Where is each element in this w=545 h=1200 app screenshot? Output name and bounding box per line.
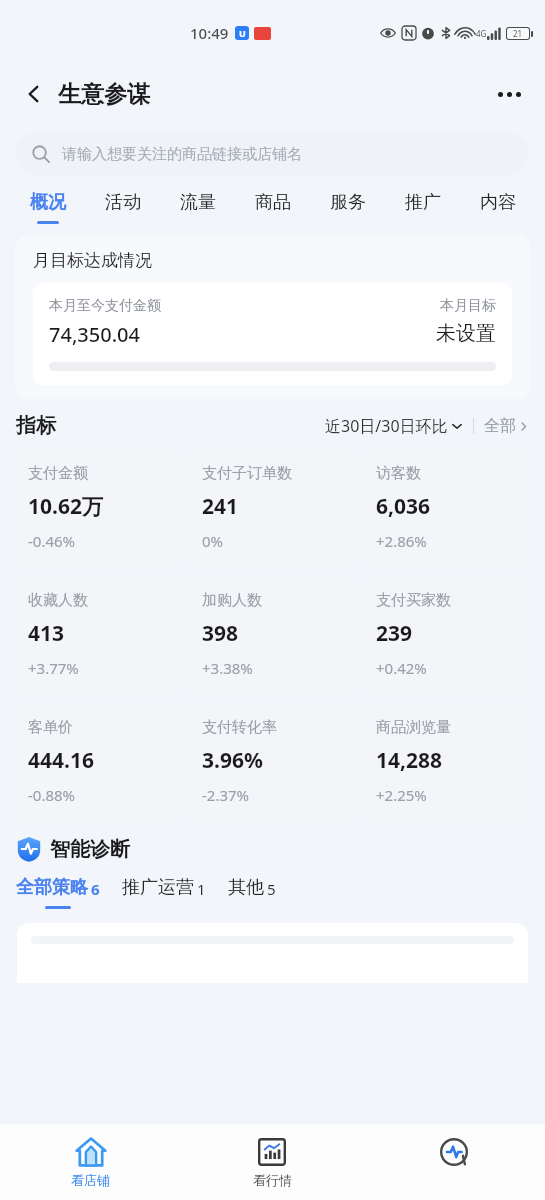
staticText: 398 bbox=[202, 619, 239, 648]
staticText: 指标 bbox=[16, 413, 56, 438]
staticText: +3.38% bbox=[202, 658, 253, 678]
staticText: 支付金额 bbox=[28, 464, 88, 483]
button[interactable]: More options bbox=[489, 74, 529, 114]
button[interactable]: 流量 bbox=[160, 182, 235, 232]
button[interactable] bbox=[17, 923, 528, 983]
staticText: 413 bbox=[28, 619, 65, 648]
button[interactable]: 全部策略 bbox=[16, 876, 100, 909]
staticText: 未设置 bbox=[436, 321, 496, 346]
staticText: 10:49 bbox=[190, 23, 229, 43]
staticText: 241 bbox=[202, 492, 239, 521]
staticText: 概况 bbox=[30, 191, 66, 214]
staticText: 访客数 bbox=[376, 464, 421, 483]
button[interactable]: 推广 bbox=[385, 182, 460, 232]
button[interactable]: 看行情 bbox=[181, 1124, 363, 1200]
staticText: 商品 bbox=[255, 191, 291, 214]
staticText: 看行情 bbox=[253, 1172, 292, 1188]
staticText: +2.25% bbox=[376, 785, 427, 805]
staticText: 商品浏览量 bbox=[376, 718, 451, 737]
staticText: 支付买家数 bbox=[376, 591, 451, 610]
button[interactable]: 近30日/30日环比 bbox=[325, 415, 463, 437]
staticText: 0% bbox=[202, 531, 224, 551]
staticText: 4G bbox=[476, 28, 487, 39]
button[interactable]: 看店铺 bbox=[0, 1124, 181, 1200]
button[interactable]: 推广运营 bbox=[122, 876, 206, 899]
button[interactable]: 请输入想要关注的商品链接或店铺名 bbox=[16, 132, 529, 176]
staticText: 推广 bbox=[405, 191, 441, 214]
staticText: 加购人数 bbox=[202, 591, 262, 610]
staticText: -2.37% bbox=[202, 785, 250, 805]
button[interactable]: 内容 bbox=[460, 182, 535, 232]
button[interactable]: 其他 bbox=[228, 876, 276, 899]
button[interactable]: 收藏人数 bbox=[15, 575, 182, 695]
staticText: -0.46% bbox=[28, 531, 76, 551]
button[interactable]: 商品 bbox=[235, 182, 310, 232]
staticText: 客单价 bbox=[28, 718, 73, 737]
staticText: 全部策略 bbox=[16, 876, 88, 899]
button[interactable]: 加购人数 bbox=[189, 575, 356, 695]
staticText: 内容 bbox=[480, 191, 516, 214]
staticText: 流量 bbox=[180, 191, 216, 214]
staticText: 21 bbox=[513, 28, 523, 39]
staticText: 3.96% bbox=[202, 746, 263, 775]
staticText: 其他 bbox=[228, 876, 264, 899]
staticText: 全部 bbox=[484, 416, 516, 436]
staticText: 看店铺 bbox=[71, 1172, 110, 1188]
button[interactable]: 客单价 bbox=[15, 702, 182, 822]
staticText: 智能诊断 bbox=[50, 837, 130, 862]
staticText: 生意参谋 bbox=[58, 80, 150, 109]
button[interactable]: 服务 bbox=[310, 182, 385, 232]
button[interactable]: 全部 bbox=[484, 416, 529, 436]
staticText: 6 bbox=[91, 879, 100, 899]
staticText: 239 bbox=[376, 619, 413, 648]
button[interactable]: 访客数 bbox=[363, 448, 530, 568]
staticText: +3.77% bbox=[28, 658, 79, 678]
staticText: 5 bbox=[267, 879, 276, 899]
staticText: 10.62万 bbox=[28, 492, 103, 521]
staticText: 444.16 bbox=[28, 746, 94, 775]
button[interactable]: 支付转化率 bbox=[189, 702, 356, 822]
staticText: +0.42% bbox=[376, 658, 427, 678]
button[interactable]: 月目标达成情况 bbox=[15, 236, 530, 399]
staticText: 服务 bbox=[330, 191, 366, 214]
button[interactable]: 支付金额 bbox=[15, 448, 182, 568]
staticText: 1 bbox=[197, 879, 206, 899]
staticText: 支付子订单数 bbox=[202, 464, 292, 483]
staticText: U bbox=[239, 27, 246, 39]
button[interactable]: 诊断 bbox=[363, 1124, 545, 1200]
staticText: 近30日/30日环比 bbox=[325, 415, 448, 437]
button[interactable]: 支付子订单数 bbox=[189, 448, 356, 568]
staticText: 14,288 bbox=[376, 746, 443, 775]
button[interactable]: 支付买家数 bbox=[363, 575, 530, 695]
staticText: 活动 bbox=[105, 191, 141, 214]
button[interactable]: 活动 bbox=[85, 182, 160, 232]
staticText: 本月至今支付金额 bbox=[49, 297, 161, 315]
staticText: +2.86% bbox=[376, 531, 427, 551]
staticText: 月目标达成情况 bbox=[33, 250, 152, 271]
button[interactable]: Back bbox=[16, 76, 52, 112]
button[interactable]: 概况 bbox=[10, 182, 85, 232]
staticText: 本月目标 bbox=[440, 297, 496, 315]
staticText: 74,350.04 bbox=[49, 321, 140, 348]
staticText: 6,036 bbox=[376, 492, 431, 521]
staticText: 支付转化率 bbox=[202, 718, 277, 737]
staticText: 收藏人数 bbox=[28, 591, 88, 610]
staticText: -0.88% bbox=[28, 785, 76, 805]
staticText: 推广运营 bbox=[122, 876, 194, 899]
button[interactable]: 商品浏览量 bbox=[363, 702, 530, 822]
staticText: 请输入想要关注的商品链接或店铺名 bbox=[62, 145, 302, 164]
